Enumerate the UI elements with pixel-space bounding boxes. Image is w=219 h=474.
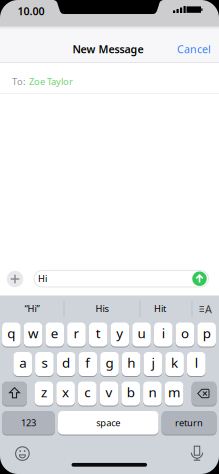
button[interactable]: space [58,411,158,434]
button[interactable]: c [78,381,97,405]
staticText: v [105,383,112,401]
staticText: s [41,354,47,371]
button[interactable]: w [24,322,42,346]
staticText: A [205,302,212,316]
staticText: j [151,354,154,371]
button[interactable]: x [56,381,75,405]
staticText: y [116,324,123,342]
staticText: Cancel [177,42,211,56]
button[interactable]: s [35,352,54,376]
staticText: r [73,324,79,342]
staticText: h [127,354,135,371]
button[interactable]: b [121,381,140,405]
button[interactable]: f [78,352,97,376]
button[interactable]: t [89,322,107,346]
button[interactable]: u [132,322,151,346]
staticText: c [84,383,90,401]
button[interactable]: r [67,322,86,346]
staticText: 123 [21,417,36,429]
staticText: q [7,324,15,342]
button[interactable]: e [45,322,64,346]
button[interactable]: o [176,322,194,346]
button[interactable]: 123 [2,411,55,434]
staticText: w [28,324,38,342]
button[interactable]: Hit [136,298,184,318]
button[interactable]: Apps [7,271,23,287]
button[interactable]: Shift [2,381,27,405]
button[interactable]: j [144,352,162,376]
staticText: space [96,417,120,429]
staticText: New Message [72,42,143,56]
staticText: b [127,383,135,401]
button[interactable]: k [165,352,184,376]
staticText: “Hi” [24,302,39,315]
button[interactable]: h [122,352,140,376]
staticText: Zoe Taylor [29,75,73,88]
button[interactable]: v [100,381,118,405]
staticText: i [162,324,165,342]
button[interactable]: m [165,381,183,405]
button[interactable]: Send [192,271,207,286]
button[interactable]: y [110,322,129,346]
button[interactable]: p [197,322,216,346]
staticText: m [168,383,180,401]
staticText: l [195,354,198,371]
button[interactable]: i [154,322,173,346]
button[interactable]: n [143,381,162,405]
button[interactable]: Dictate [190,447,204,461]
button[interactable]: “Hi” [2,298,62,318]
staticText: g [105,354,113,371]
staticText: o [181,324,189,342]
staticText: z [41,383,47,401]
staticText: return [175,417,203,429]
staticText: k [171,354,178,371]
button[interactable]: AutoFill [199,304,213,314]
button[interactable]: l [187,352,206,376]
staticText: 10.00 [17,4,44,18]
button[interactable]: a [13,352,32,376]
staticText: a [19,354,26,371]
staticText: e [51,324,59,342]
staticText: p [203,324,211,342]
staticText: t [96,324,101,342]
button[interactable]: g [100,352,119,376]
button[interactable]: His [67,298,137,318]
staticText: Hit [154,302,166,315]
button[interactable]: To: [12,72,219,90]
staticText: x [62,383,69,401]
staticText: u [138,324,146,342]
staticText: Hi [38,272,47,285]
staticText: n [148,383,156,401]
button[interactable]: Cancel [174,40,214,58]
button[interactable]: Emoji [15,446,30,461]
button[interactable]: d [57,352,75,376]
staticText: f [85,354,90,371]
button[interactable]: z [35,381,53,405]
button[interactable]: Delete [192,381,216,405]
staticText: d [62,354,70,371]
staticText: To: [12,75,26,88]
button[interactable]: return [162,411,216,434]
staticText: His [95,302,108,315]
button[interactable]: q [2,322,21,346]
